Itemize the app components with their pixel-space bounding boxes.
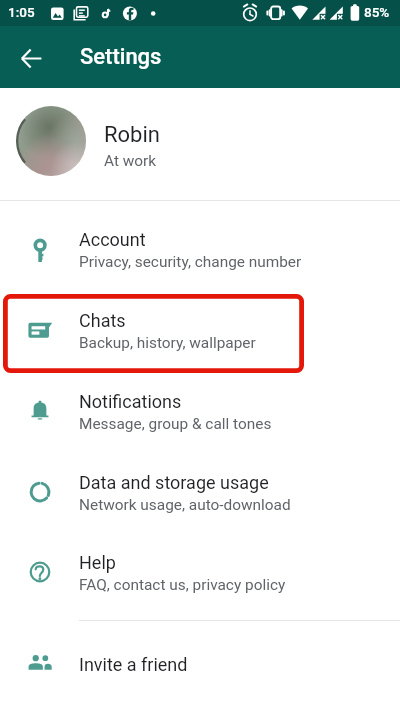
button[interactable]: Chats bbox=[0, 290, 400, 371]
staticText: Network usage, auto-download bbox=[79, 496, 291, 514]
staticText: Privacy, security, change number bbox=[79, 253, 302, 271]
staticText: FAQ, contact us, privacy policy bbox=[79, 576, 286, 594]
staticText: Message, group & call tones bbox=[79, 415, 272, 433]
staticText: 1:05 bbox=[8, 4, 35, 20]
staticText: Account bbox=[79, 229, 146, 250]
button[interactable]: Notifications bbox=[0, 371, 400, 452]
staticText: Help bbox=[79, 552, 116, 573]
button[interactable]: Account bbox=[0, 209, 400, 290]
staticText: Robin bbox=[104, 122, 160, 148]
staticText: At work bbox=[104, 152, 157, 170]
staticText: Backup, history, wallpaper bbox=[79, 334, 256, 352]
button[interactable]: Help bbox=[0, 532, 400, 613]
button[interactable]: Invite a friend bbox=[0, 623, 400, 704]
staticText: Settings bbox=[80, 44, 162, 70]
staticText: Invite a friend bbox=[79, 654, 188, 675]
button[interactable]: Data and storage usage bbox=[0, 452, 400, 533]
staticText: Data and storage usage bbox=[79, 472, 269, 493]
button[interactable]: Robin bbox=[0, 88, 400, 200]
staticText: Notifications bbox=[79, 391, 182, 412]
button[interactable]: Back bbox=[9, 36, 53, 80]
staticText: Chats bbox=[79, 310, 126, 331]
staticText: 85% bbox=[364, 4, 390, 20]
